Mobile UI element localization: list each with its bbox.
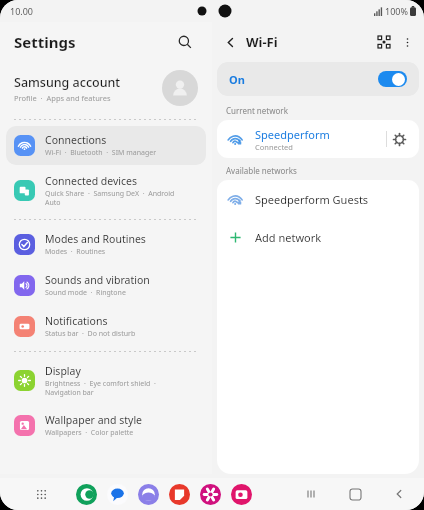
staticText: Wallpaper and style <box>45 413 143 427</box>
staticText: Wi-Fi <box>246 33 278 51</box>
staticText: 100% <box>385 5 408 17</box>
staticText: Modes · Routines <box>45 247 106 257</box>
staticText: 10.00 <box>10 5 34 17</box>
button[interactable]: Speedperform <box>217 120 419 158</box>
staticText: Wallpapers · Color palette <box>45 428 134 438</box>
button[interactable]: Home <box>342 481 368 507</box>
button[interactable]: App <box>231 484 252 505</box>
staticText: Add network <box>255 230 322 245</box>
button[interactable]: Sounds and vibration <box>6 266 206 305</box>
button[interactable]: Recents <box>298 481 324 507</box>
button[interactable]: Network settings <box>387 127 411 151</box>
staticText: Display <box>45 364 81 378</box>
button[interactable]: Search <box>172 29 198 55</box>
staticText: Notifications <box>45 314 108 328</box>
button[interactable]: Back <box>386 481 412 507</box>
button[interactable]: Connected devices <box>6 167 206 214</box>
staticText: Wi-Fi · Bluetooth · SIM manager <box>45 148 157 158</box>
button[interactable]: App <box>138 484 159 505</box>
staticText: Connected devices <box>45 174 138 188</box>
staticText: Modes and Routines <box>45 232 146 246</box>
button[interactable]: Samsung account <box>0 62 212 114</box>
button[interactable]: App <box>169 484 190 505</box>
button[interactable]: More options <box>396 31 418 53</box>
staticText: Status bar · Do not disturb <box>45 329 136 339</box>
staticText: Speedperform Guests <box>255 192 369 207</box>
staticText: Sounds and vibration <box>45 273 150 287</box>
staticText: Samsung account <box>14 74 121 91</box>
staticText: Connections <box>45 133 107 147</box>
button[interactable]: App <box>76 484 97 505</box>
staticText: Settings <box>14 32 76 52</box>
button[interactable]: On <box>217 62 419 96</box>
button[interactable]: Back <box>218 30 242 54</box>
staticText: Available networks <box>226 165 297 176</box>
button[interactable]: Add network <box>217 218 419 256</box>
button[interactable]: App <box>107 484 128 505</box>
button[interactable]: Connections <box>6 126 206 165</box>
button[interactable]: Wallpaper and style <box>6 406 206 445</box>
staticText: Profile · Apps and features <box>14 93 111 103</box>
staticText: Speedperform <box>255 127 330 142</box>
button[interactable]: App <box>200 484 221 505</box>
staticText: Quick Share · Samsung DeX · Android Auto <box>45 189 175 207</box>
button[interactable]: Speedperform Guests <box>217 180 419 218</box>
button[interactable]: Modes and Routines <box>6 225 206 264</box>
button[interactable]: Display <box>6 357 206 404</box>
button[interactable]: Scan QR code <box>372 30 396 54</box>
button[interactable]: Apps <box>30 483 52 505</box>
staticText: Sound mode · Ringtone <box>45 288 126 298</box>
staticText: Brightness · Eye comfort shield · Naviga… <box>45 379 156 397</box>
button[interactable]: Notifications <box>6 307 206 346</box>
staticText: Connected <box>255 142 293 152</box>
staticText: Current network <box>226 105 288 116</box>
staticText: On <box>229 72 245 87</box>
